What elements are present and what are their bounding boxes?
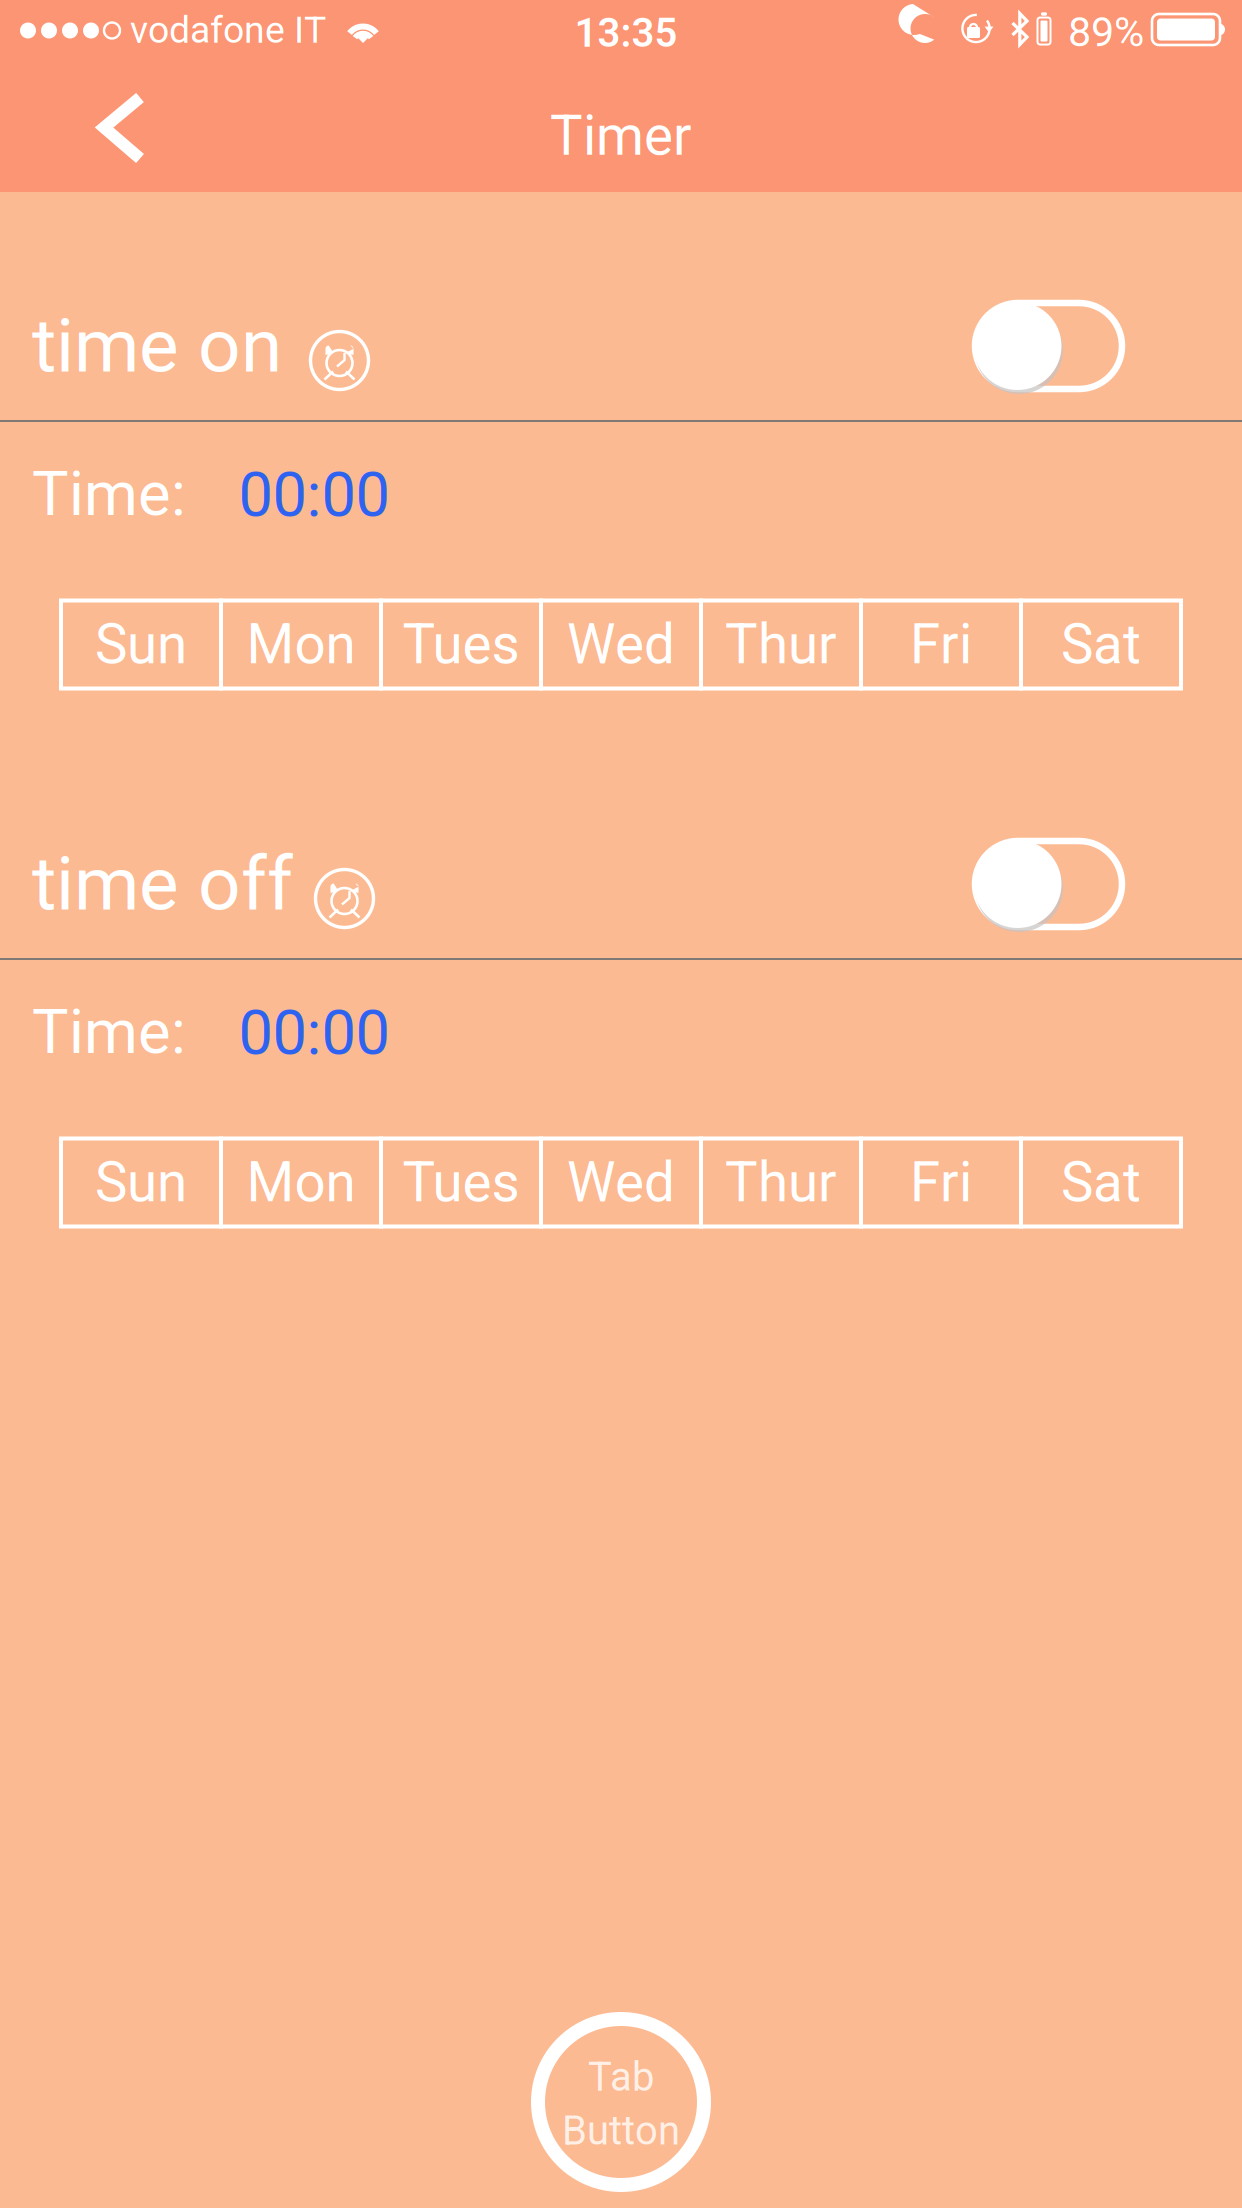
staticText: Tues — [402, 1150, 519, 1215]
staticText: 13:35 — [574, 10, 677, 56]
button[interactable]: Tab Button — [531, 2012, 711, 2192]
button[interactable]: Tues — [381, 1138, 541, 1226]
button[interactable]: Wed — [541, 1138, 701, 1226]
staticText: Time: — [32, 996, 186, 1068]
staticText: Wed — [567, 1150, 675, 1215]
staticText: Wed — [567, 612, 675, 677]
button[interactable]: Toggle time on — [972, 300, 1125, 392]
button[interactable]: Sun — [61, 1138, 221, 1226]
staticText: Thur — [725, 1150, 837, 1215]
button[interactable]: Fri — [861, 1138, 1021, 1226]
button[interactable]: Sat — [1021, 1138, 1181, 1226]
staticText: time off — [32, 840, 293, 928]
button[interactable]: 00:00 — [239, 459, 389, 531]
staticText: Tues — [402, 612, 519, 677]
staticText: Timer — [550, 104, 692, 168]
staticText: Mon — [246, 1150, 355, 1215]
button[interactable]: Wed — [541, 600, 701, 688]
staticText: Tab — [588, 2054, 654, 2100]
staticText: Mon — [246, 612, 355, 677]
button[interactable]: Sun — [61, 600, 221, 688]
staticText: Sat — [1061, 1150, 1141, 1215]
staticText: Sat — [1061, 612, 1141, 677]
button[interactable]: Thur — [701, 1138, 861, 1226]
button[interactable]: Mon — [221, 1138, 381, 1226]
staticText: Thur — [725, 612, 837, 677]
staticText: Button — [562, 2107, 680, 2154]
button[interactable]: 00:00 — [239, 997, 389, 1069]
button[interactable]: Tues — [381, 600, 541, 688]
staticText: 00:00 — [238, 459, 389, 531]
button[interactable]: Mon — [221, 600, 381, 688]
button[interactable]: Thur — [701, 600, 861, 688]
staticText: time on — [32, 302, 282, 390]
button[interactable]: Toggle time off — [972, 838, 1125, 930]
button[interactable]: Back — [74, 86, 170, 170]
staticText: Sun — [95, 612, 187, 677]
button[interactable]: Sat — [1021, 600, 1181, 688]
staticText: vodafone IT — [130, 8, 326, 52]
staticText: Fri — [910, 1150, 972, 1215]
staticText: Sun — [95, 1150, 187, 1215]
staticText: Time: — [32, 458, 186, 530]
staticText: 00:00 — [238, 997, 389, 1069]
staticText: 89% — [1068, 8, 1144, 56]
button[interactable]: Fri — [861, 600, 1021, 688]
staticText: Fri — [910, 612, 972, 677]
